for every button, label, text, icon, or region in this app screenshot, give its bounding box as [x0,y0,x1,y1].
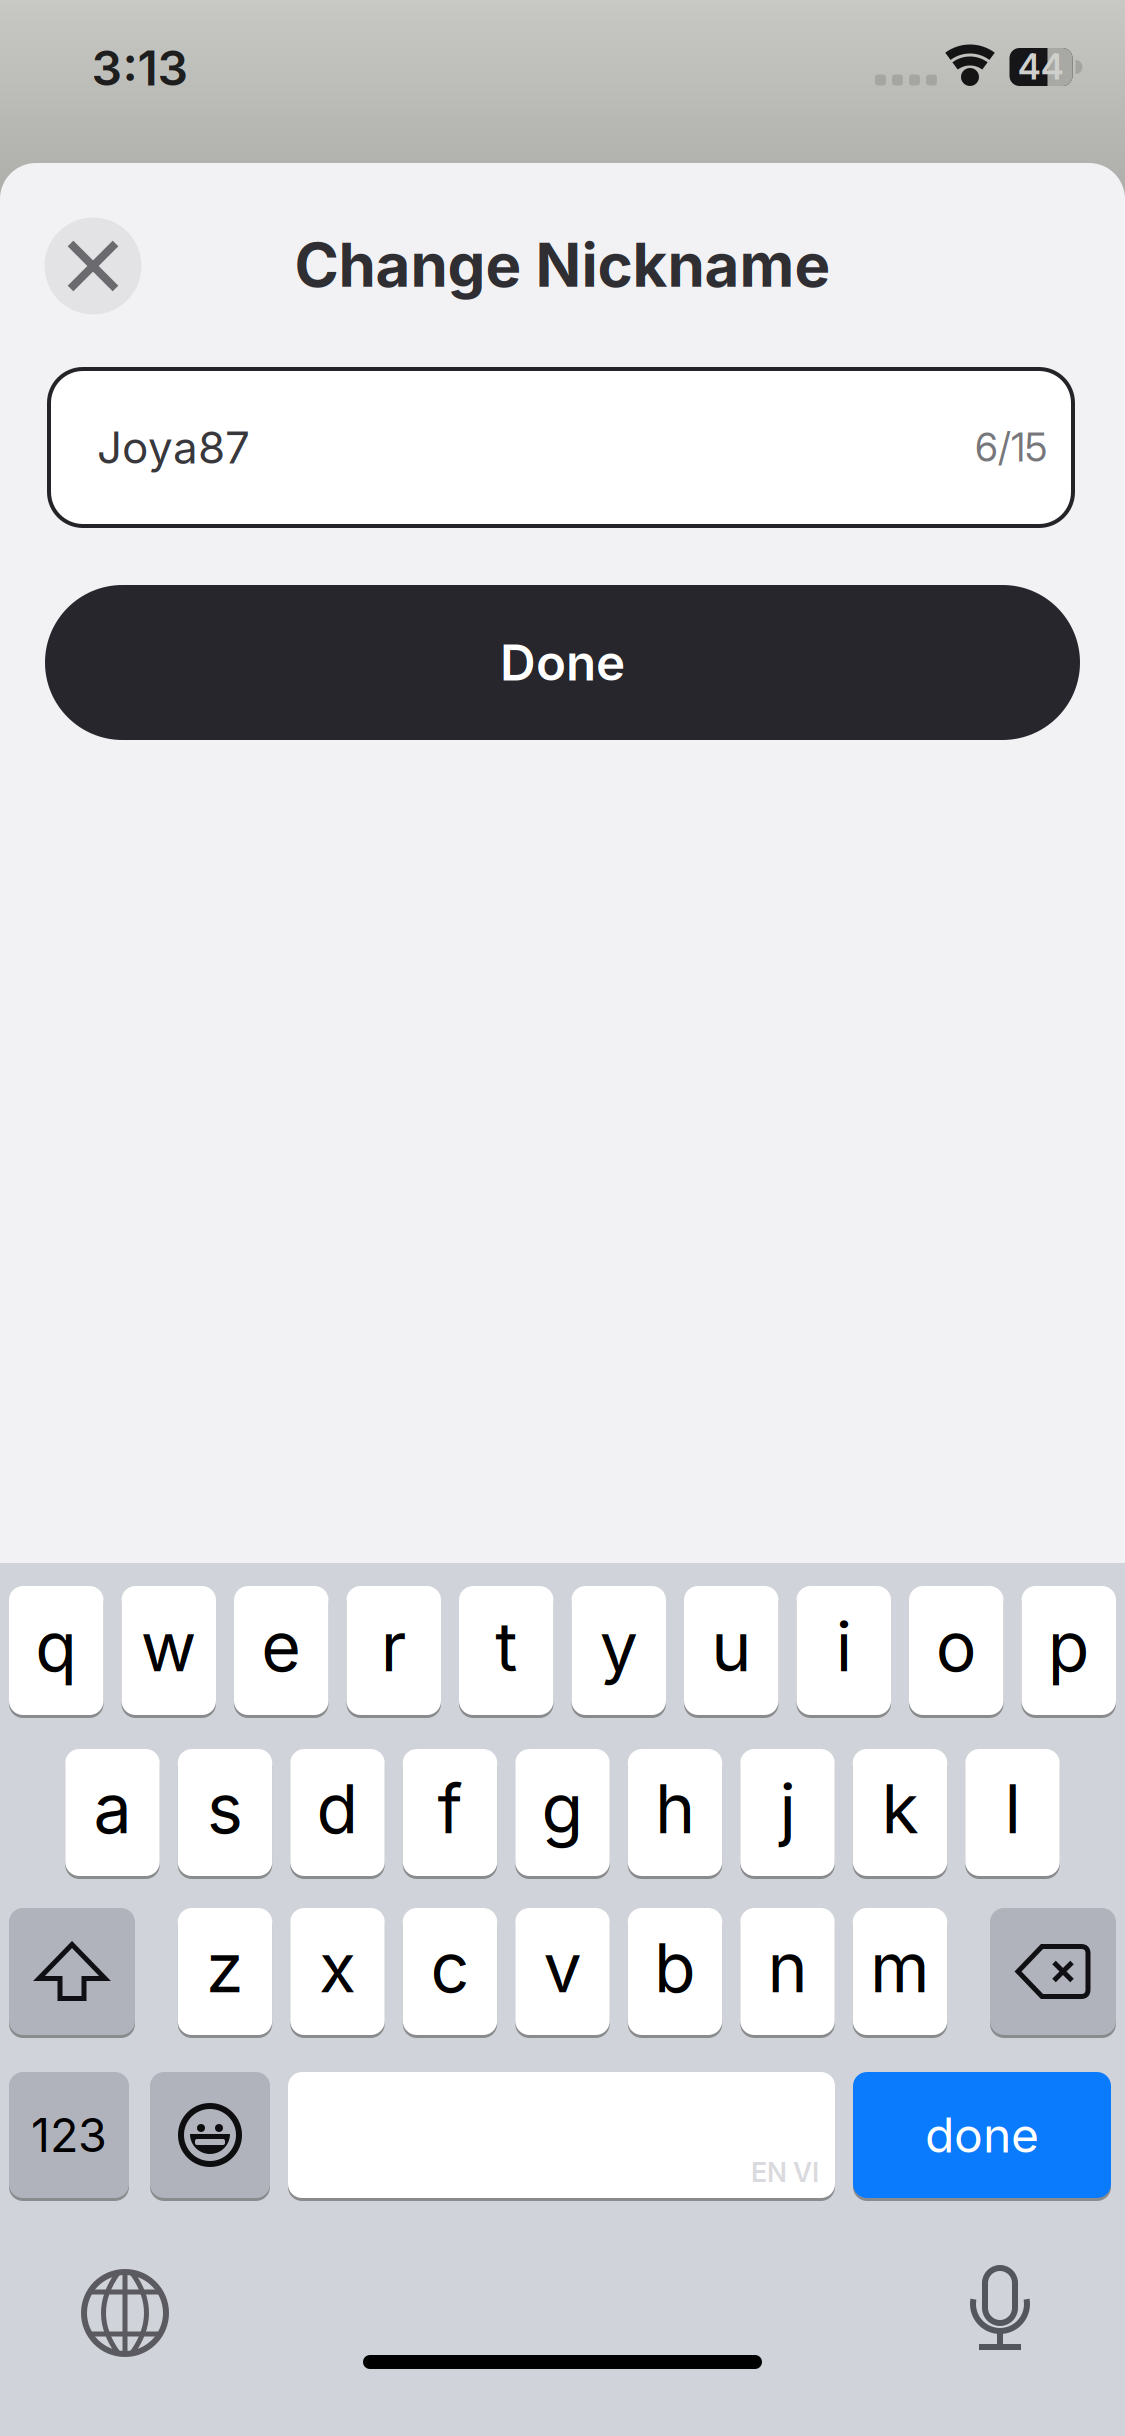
button[interactable]: b [628,1908,722,2035]
staticText: 3:13 [91,40,188,96]
staticText: f [437,1768,462,1849]
button[interactable]: Next keyboard [82,2270,168,2356]
button[interactable]: Delete [990,1908,1116,2035]
staticText: o [936,1606,977,1687]
staticText: c [430,1927,469,2008]
staticText: q [35,1606,77,1687]
button[interactable]: 123 [9,2072,129,2198]
button[interactable]: Space [288,2072,835,2198]
staticText: k [881,1768,918,1849]
staticText: n [767,1927,807,2008]
staticText: EN VI [751,2156,819,2188]
staticText: r [381,1606,407,1687]
staticText: u [711,1606,751,1687]
staticText: h [655,1768,695,1849]
button[interactable]: h [628,1749,722,1876]
staticText: j [779,1768,795,1849]
staticText: t [495,1606,517,1687]
button[interactable]: i [796,1586,891,1715]
button[interactable]: t [459,1586,553,1715]
button[interactable]: Dictation [970,2268,1030,2352]
staticText: Joya87 [97,421,250,473]
staticText: 6/15 [975,425,1047,470]
button[interactable]: v [515,1908,610,2035]
staticText: i [836,1606,852,1687]
staticText: Change Nickname [294,230,830,300]
button[interactable]: l [965,1749,1060,1876]
button[interactable]: a [65,1749,160,1876]
staticText: l [1004,1768,1020,1849]
staticText: e [261,1606,301,1687]
staticText: p [1048,1606,1090,1687]
button[interactable]: n [740,1908,835,2035]
staticText: m [870,1927,930,2008]
button[interactable]: q [9,1586,103,1715]
button[interactable]: Close [44,217,141,314]
button[interactable]: k [853,1749,947,1876]
button[interactable]: c [403,1908,497,2035]
button[interactable]: r [346,1586,441,1715]
staticText: done [925,2107,1039,2163]
button[interactable]: p [1021,1586,1116,1715]
button[interactable]: z [178,1908,272,2035]
button[interactable]: g [515,1749,610,1876]
staticText: Done [500,633,625,692]
staticText: w [141,1606,197,1687]
button[interactable]: m [853,1908,947,2035]
button[interactable]: Shift [9,1908,135,2035]
button[interactable]: x [290,1908,385,2035]
button[interactable]: s [178,1749,272,1876]
button[interactable]: f [403,1749,497,1876]
staticText: x [319,1927,356,2008]
button[interactable]: y [571,1586,666,1715]
staticText: v [543,1927,581,2008]
button[interactable]: w [121,1586,216,1715]
button[interactable]: Done [45,585,1080,740]
staticText: b [654,1927,696,2008]
staticText: z [206,1927,244,2008]
button[interactable]: Emoji [150,2072,270,2198]
staticText: 123 [31,2107,107,2163]
staticText: g [541,1768,583,1849]
staticText: a [93,1768,131,1849]
button[interactable]: d [290,1749,385,1876]
staticText: s [207,1768,243,1849]
button[interactable]: e [234,1586,328,1715]
button[interactable]: j [740,1749,835,1876]
staticText: 44 [1018,47,1064,87]
staticText: y [600,1606,638,1687]
button[interactable]: u [684,1586,778,1715]
button[interactable]: done [853,2072,1111,2198]
button[interactable]: o [909,1586,1003,1715]
staticText: d [316,1768,358,1849]
